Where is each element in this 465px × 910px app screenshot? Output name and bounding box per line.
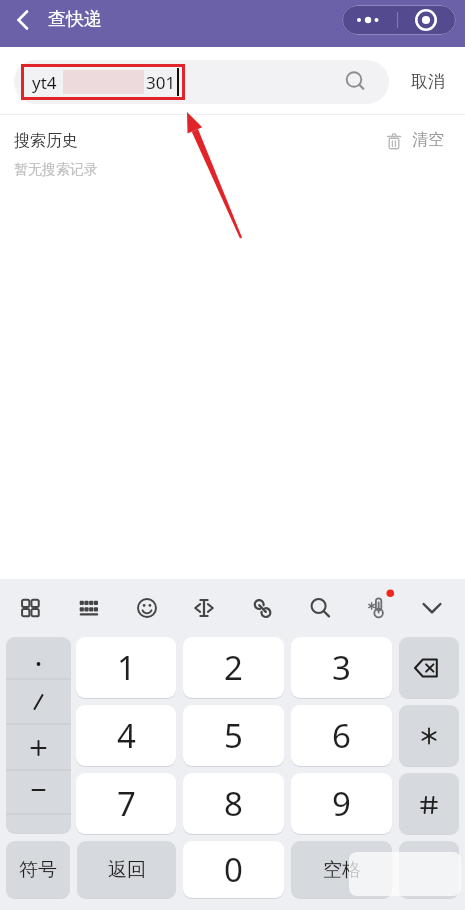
button[interactable]: 3 xyxy=(291,637,392,698)
staticText: 暂无搜索记录 xyxy=(14,161,98,179)
button[interactable]: 0 xyxy=(183,841,284,898)
staticText: 1 xyxy=(117,645,136,690)
button[interactable]: 取消 xyxy=(403,60,458,104)
button[interactable]: 符号 xyxy=(6,841,70,898)
staticText: 清空 xyxy=(412,130,444,150)
staticText: 查快递 xyxy=(48,8,102,31)
button[interactable] xyxy=(8,4,42,38)
button[interactable] xyxy=(399,705,459,766)
button[interactable] xyxy=(6,637,71,833)
button[interactable] xyxy=(399,637,459,698)
staticText: 空格 xyxy=(323,858,361,882)
button[interactable] xyxy=(399,841,459,898)
staticText: 7 xyxy=(117,781,136,826)
staticText: 8 xyxy=(224,781,243,826)
staticText: 301 xyxy=(146,71,176,94)
button[interactable] xyxy=(399,773,459,834)
staticText: 6 xyxy=(332,713,351,758)
button[interactable] xyxy=(342,5,456,35)
staticText: 9 xyxy=(332,781,351,826)
button[interactable]: 清空 xyxy=(381,126,453,154)
button[interactable] xyxy=(14,60,389,104)
staticText: 取消 xyxy=(411,71,445,92)
button[interactable]: 9 xyxy=(291,773,392,834)
staticText: 5 xyxy=(224,713,243,758)
button[interactable]: 4 xyxy=(76,705,176,766)
staticText: 符号 xyxy=(19,858,57,882)
button[interactable]: 6 xyxy=(291,705,392,766)
button[interactable]: 1 xyxy=(76,637,176,698)
staticText: 0 xyxy=(224,847,243,892)
staticText: 返回 xyxy=(108,858,146,882)
button[interactable]: 返回 xyxy=(77,841,176,898)
button[interactable]: 8 xyxy=(183,773,284,834)
button[interactable]: 2 xyxy=(183,637,284,698)
staticText: 3 xyxy=(332,645,351,690)
staticText: 4 xyxy=(117,713,136,758)
button[interactable]: 5 xyxy=(183,705,284,766)
staticText: yt4 xyxy=(32,71,57,94)
button[interactable]: 7 xyxy=(76,773,176,834)
staticText: 搜索历史 xyxy=(14,131,78,151)
staticText: 2 xyxy=(224,645,243,690)
button[interactable]: 空格 xyxy=(291,841,392,898)
